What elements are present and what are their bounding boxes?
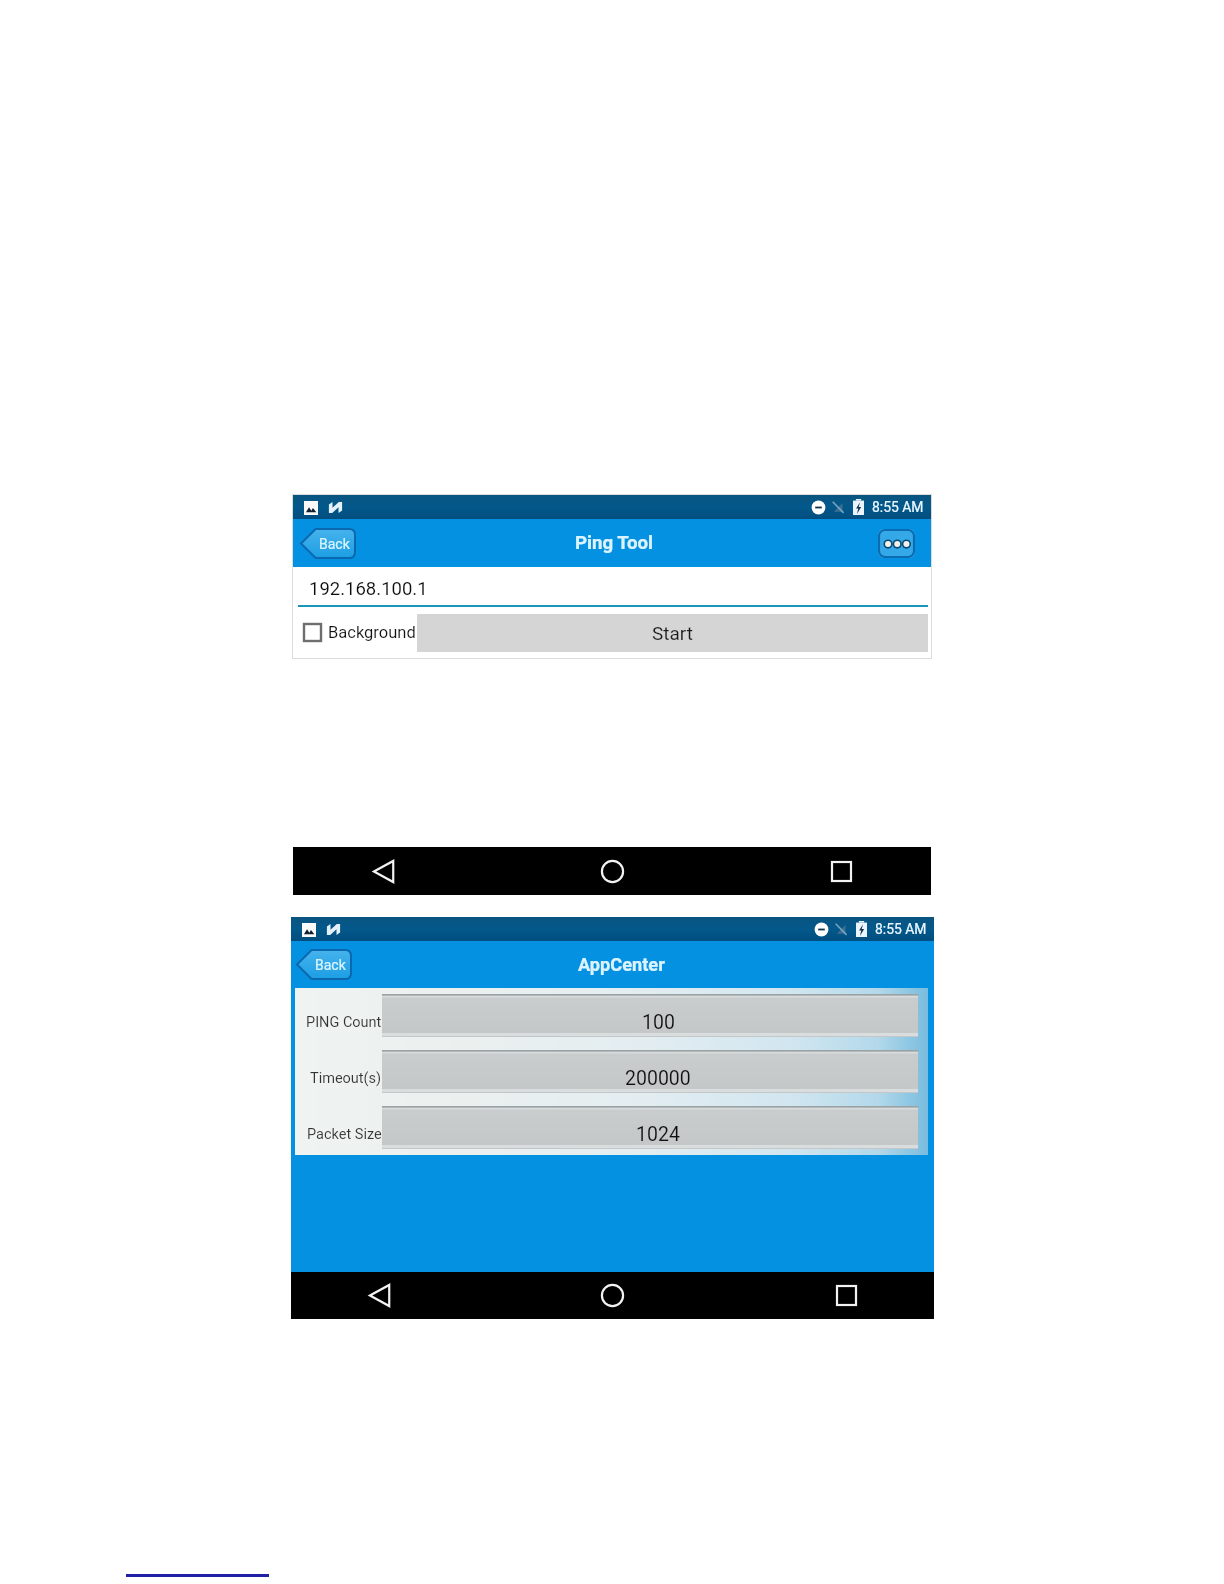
- staticText: Back: [315, 957, 346, 973]
- staticText: 100: [642, 1011, 675, 1034]
- staticText: 1024: [636, 1123, 680, 1146]
- button[interactable]: Home: [582, 1272, 643, 1319]
- staticText: AppCenter: [578, 954, 665, 975]
- button[interactable]: Background: [304, 618, 416, 647]
- button[interactable]: Recent apps: [816, 1272, 877, 1319]
- button[interactable]: 100: [382, 994, 918, 1037]
- button[interactable]: More options: [878, 529, 915, 558]
- staticText: Start: [652, 622, 693, 644]
- button[interactable]: Home: [581, 847, 643, 895]
- button[interactable]: 200000: [382, 1050, 918, 1093]
- staticText: Timeout(s): [310, 1070, 382, 1087]
- button[interactable]: 1024: [382, 1106, 918, 1149]
- button[interactable]: Back: [301, 529, 355, 558]
- button[interactable]: Back: [353, 847, 415, 895]
- staticText: Packet Size: [307, 1126, 382, 1143]
- staticText: Ping Tool: [575, 532, 654, 554]
- staticText: PING Count: [306, 1014, 382, 1031]
- button[interactable]: Back: [350, 1272, 411, 1319]
- staticText: 8:55 AM: [872, 499, 924, 515]
- staticText: 8:55 AM: [875, 921, 927, 937]
- staticText: 200000: [625, 1067, 691, 1090]
- button[interactable]: Back: [297, 950, 351, 979]
- staticText: 192.168.100.1: [309, 578, 428, 600]
- button[interactable]: Start: [417, 614, 928, 652]
- staticText: Background: [328, 623, 416, 642]
- staticText: Back: [319, 536, 350, 552]
- button[interactable]: Recent apps: [810, 847, 872, 895]
